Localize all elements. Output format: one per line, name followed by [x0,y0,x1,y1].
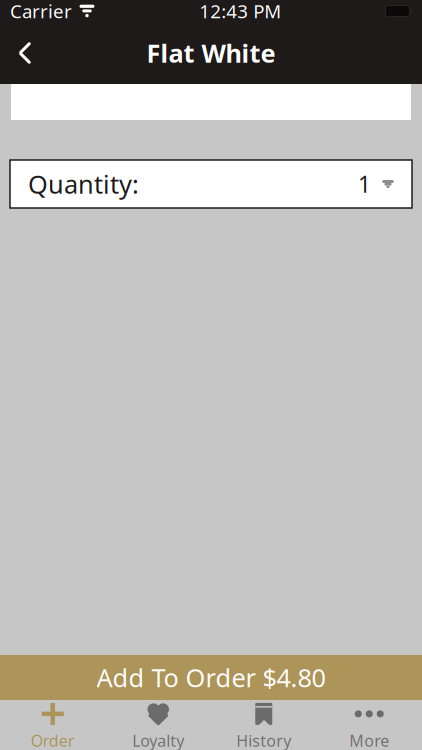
staticText: 12:43 PM [199,0,281,23]
button[interactable]: History [211,695,316,750]
button[interactable]: Loyalty [105,695,211,750]
staticText: Quantity: [28,167,139,201]
staticText: Add To Order $4.80 [96,661,325,694]
staticText: Order [31,730,75,750]
button[interactable]: Quantity: [10,160,412,208]
button[interactable]: Back [0,32,36,74]
staticText: More [349,730,389,750]
button[interactable]: More [316,695,422,750]
button[interactable]: Add To Order $4.80 [0,655,422,700]
staticText: 1 [358,169,371,199]
staticText: Flat White [146,36,275,70]
staticText: History [236,730,291,750]
button[interactable]: Order [0,695,105,750]
staticText: Carrier [10,0,72,23]
staticText: Loyalty [132,730,184,750]
